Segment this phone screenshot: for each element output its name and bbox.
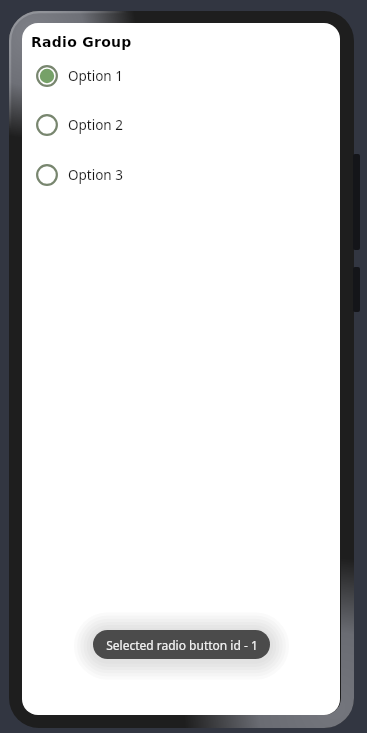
other: Option 3, not selected	[36, 164, 58, 186]
staticText: Option 2	[68, 116, 123, 134]
button[interactable]: Option 2, not selected	[22, 100, 340, 149]
staticText: Radio Group	[31, 34, 132, 50]
staticText: Option 1	[68, 67, 123, 85]
other: Option 1, selected	[36, 65, 58, 87]
other: Option 2, not selected	[36, 114, 58, 136]
button[interactable]: Option 1, selected	[22, 51, 340, 100]
button[interactable]: Option 3, not selected	[22, 150, 340, 199]
staticText: Selected radio button id - 1	[106, 637, 258, 653]
button[interactable]: Selected radio button id - 1	[93, 630, 270, 659]
staticText: Option 3	[68, 166, 123, 184]
